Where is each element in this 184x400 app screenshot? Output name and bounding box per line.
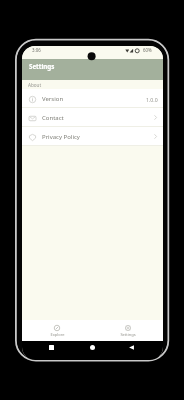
staticText: Version bbox=[42, 95, 64, 103]
button[interactable]: Settings bbox=[105, 323, 151, 339]
staticText: 60% bbox=[143, 47, 152, 53]
button[interactable]: Privacy Policy bbox=[22, 127, 163, 145]
staticText: Settings bbox=[29, 62, 55, 70]
button[interactable]: Explore bbox=[34, 323, 80, 339]
staticText: 3:06 bbox=[32, 47, 41, 53]
staticText: Explore bbox=[50, 332, 65, 337]
staticText: Contact bbox=[42, 114, 64, 122]
staticText: Settings bbox=[120, 332, 136, 337]
button[interactable]: Home bbox=[87, 342, 97, 352]
staticText: About bbox=[28, 82, 42, 88]
button[interactable]: Contact bbox=[22, 108, 163, 126]
staticText: 1.0.0 bbox=[146, 96, 158, 103]
button[interactable]: Version bbox=[22, 89, 163, 107]
button[interactable]: Recents bbox=[46, 342, 56, 352]
button[interactable]: Back bbox=[126, 342, 136, 352]
staticText: Privacy Policy bbox=[42, 133, 80, 141]
